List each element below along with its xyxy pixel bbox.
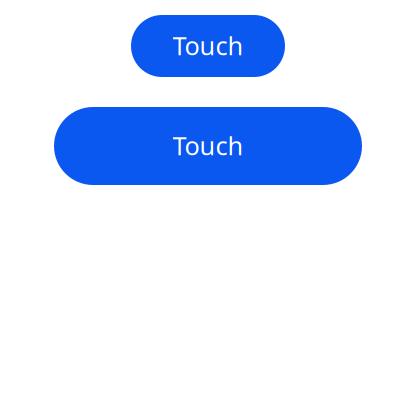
button[interactable]: Touch (131, 15, 285, 77)
staticText: Touch (172, 29, 243, 62)
staticText: Touch (172, 129, 243, 162)
button[interactable]: Touch (54, 107, 362, 185)
